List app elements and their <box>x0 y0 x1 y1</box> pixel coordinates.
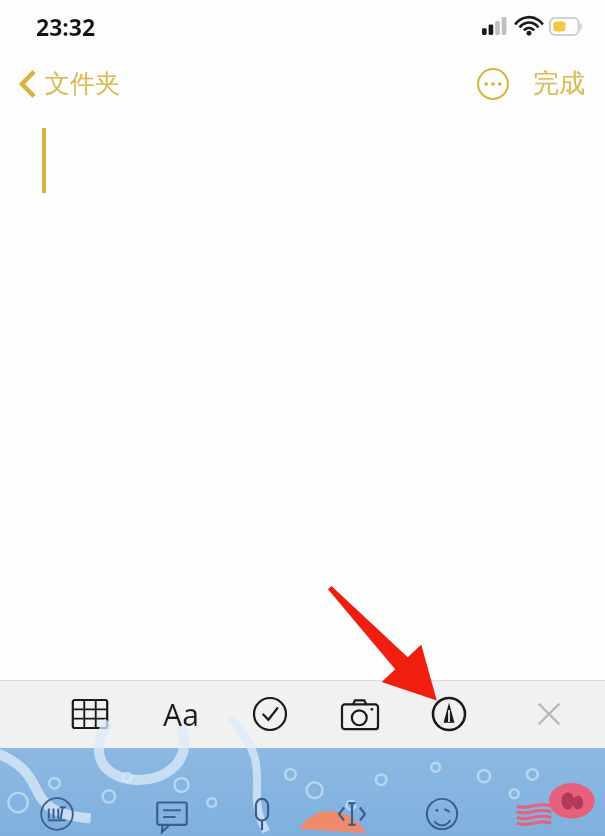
button[interactable]: Cursor control <box>324 792 380 836</box>
button[interactable]: Table <box>58 692 122 736</box>
staticText: Aa <box>163 694 199 735</box>
button[interactable]: Emoji <box>414 792 470 836</box>
button[interactable]: Aa <box>147 690 215 738</box>
staticText: 完成 <box>533 67 585 100</box>
button[interactable]: Voice input <box>234 792 290 836</box>
button[interactable]: Messages <box>144 792 200 836</box>
button[interactable]: More options <box>471 62 515 106</box>
staticText: 文件夹 <box>45 68 120 99</box>
button[interactable]: 文件夹 <box>14 62 126 105</box>
staticText: 23:32 <box>36 11 96 42</box>
button[interactable]: Text format <box>149 692 213 736</box>
button[interactable]: Input method <box>29 792 85 836</box>
button[interactable]: Close keyboard <box>517 692 581 736</box>
button[interactable]: 完成 <box>529 61 589 106</box>
button[interactable]: Checklist <box>238 692 302 736</box>
button[interactable]: Camera <box>328 692 392 736</box>
button[interactable]: Markup <box>417 692 481 736</box>
